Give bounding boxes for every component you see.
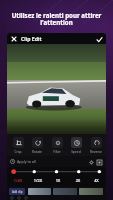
button[interactable]: Settings bbox=[87, 158, 95, 166]
staticText: Filter bbox=[53, 150, 61, 154]
button[interactable]: Add clip bbox=[9, 188, 25, 195]
staticText: Apply to all bbox=[17, 159, 36, 164]
button[interactable]: Filter bbox=[48, 134, 66, 156]
staticText: Speed bbox=[71, 150, 81, 154]
button[interactable]: Rotate bbox=[28, 134, 46, 156]
button[interactable]: Timeline tool bbox=[24, 196, 29, 200]
staticText: Reverse bbox=[90, 150, 102, 154]
staticText: Utilisez le ralenti pour attirer l'atten… bbox=[5, 11, 108, 27]
staticText: Crop bbox=[14, 150, 22, 154]
other: Speed bbox=[71, 137, 82, 148]
button[interactable]: Apply to all bbox=[10, 159, 36, 164]
other: Reverse bbox=[91, 137, 102, 148]
button[interactable]: Close bbox=[9, 34, 19, 44]
button[interactable]: Clip thumbnail bbox=[28, 188, 51, 195]
other: Rotate bbox=[32, 137, 43, 148]
button[interactable]: Fullscreen bbox=[95, 158, 103, 166]
staticText: 1/4X bbox=[8, 178, 28, 183]
staticText: 1/2X bbox=[28, 178, 48, 183]
staticText: Clip Edit bbox=[21, 35, 42, 42]
staticText: 2X bbox=[68, 178, 88, 183]
button[interactable]: Clip thumbnail bbox=[79, 188, 103, 195]
staticText: 4X bbox=[88, 178, 105, 183]
button[interactable]: Crop bbox=[9, 134, 27, 156]
other: Filter bbox=[52, 137, 63, 148]
staticText: 1X bbox=[48, 178, 68, 183]
button[interactable]: Clip thumbnail bbox=[53, 188, 77, 195]
button[interactable]: Timeline tool bbox=[10, 196, 15, 200]
staticText: Rotate bbox=[32, 150, 42, 154]
button[interactable]: Speed bbox=[67, 134, 85, 156]
button[interactable]: Confirm bbox=[94, 34, 104, 44]
button[interactable]: Speed slider bbox=[12, 167, 101, 175]
button[interactable]: Reverse bbox=[87, 134, 105, 156]
other: Crop bbox=[13, 137, 24, 148]
staticText: Add clip bbox=[12, 190, 23, 194]
button[interactable]: Timeline tool bbox=[17, 196, 22, 200]
